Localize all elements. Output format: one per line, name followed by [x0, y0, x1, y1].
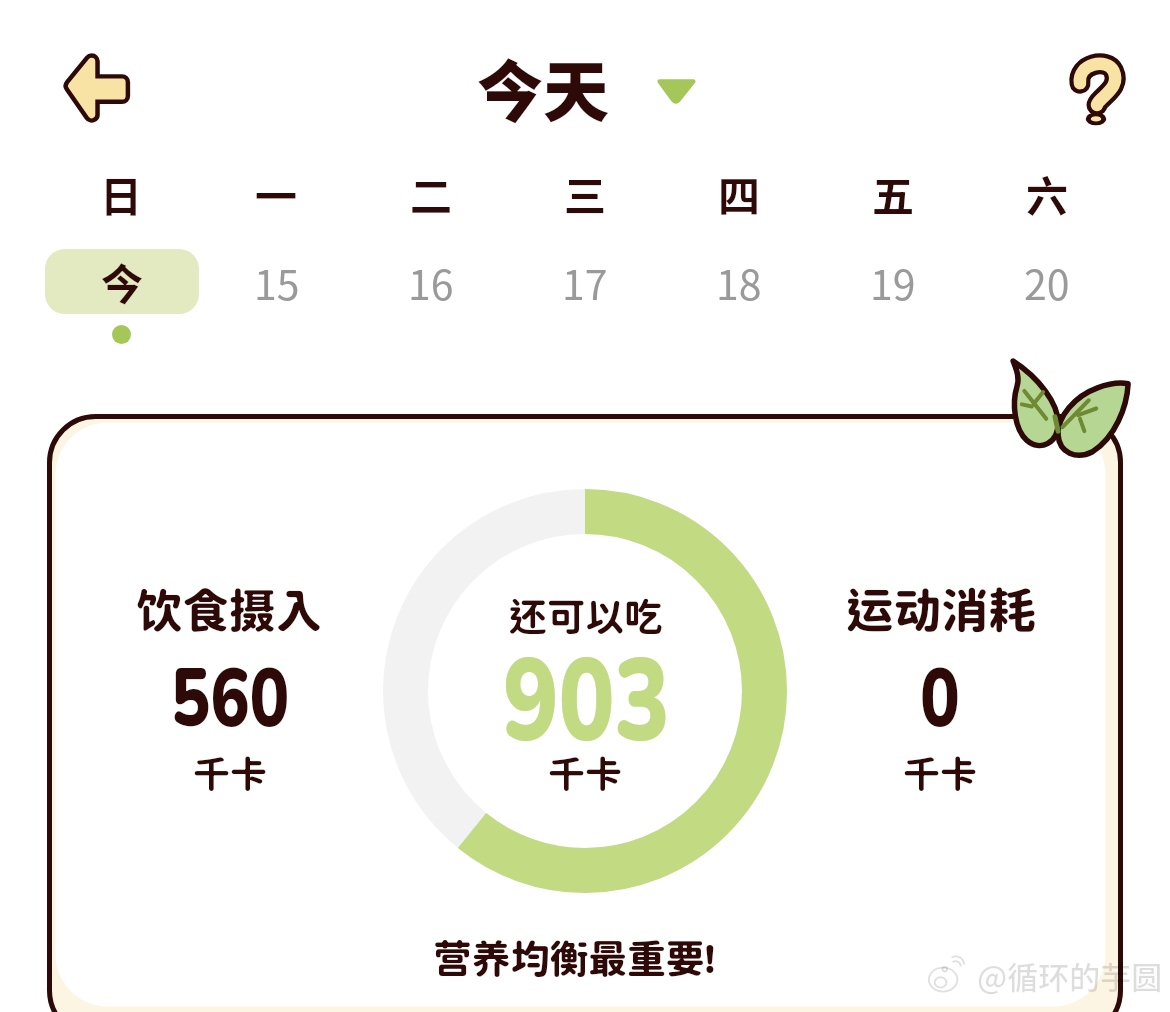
staticText: 17 [562, 252, 608, 311]
button[interactable]: Back [27, 23, 166, 153]
staticText: 三 [564, 163, 607, 224]
staticText: 今天 [477, 39, 609, 135]
button[interactable]: 一 [199, 162, 354, 344]
staticText: 日 [100, 163, 143, 224]
staticText: 19 [870, 252, 916, 311]
button[interactable]: 四 [662, 162, 816, 344]
staticText: 四 [718, 163, 761, 224]
staticText: 营养均衡最重要! [433, 935, 715, 981]
staticText: 今 [101, 251, 144, 312]
staticText: 六 [1026, 163, 1069, 224]
staticText: 千卡 [548, 752, 622, 796]
staticText: 903 [503, 626, 670, 763]
button[interactable]: 二 [354, 162, 508, 344]
staticText: 18 [716, 252, 762, 311]
button[interactable]: 六 [970, 162, 1124, 344]
staticText: 饮食摄入 [136, 583, 322, 638]
staticText: 还可以吃 [508, 594, 663, 639]
button[interactable]: 三 [508, 162, 662, 344]
staticText: 15 [254, 252, 300, 311]
staticText: 560 [171, 646, 289, 743]
staticText: 16 [408, 252, 454, 311]
staticText: 二 [410, 163, 453, 224]
staticText: 0 [920, 646, 960, 743]
staticText: 一 [255, 163, 298, 224]
button[interactable]: 五 [816, 162, 970, 344]
staticText: 千卡 [903, 752, 977, 796]
staticText: @循环的芋圆 [977, 953, 1163, 998]
staticText: 五 [872, 163, 915, 224]
staticText: 运动消耗 [846, 582, 1036, 638]
staticText: 千卡 [193, 752, 267, 796]
staticText: 20 [1024, 252, 1070, 311]
button[interactable]: 今天 [440, 26, 720, 146]
button[interactable]: Help [1037, 24, 1157, 155]
button[interactable]: 日 [44, 162, 199, 344]
